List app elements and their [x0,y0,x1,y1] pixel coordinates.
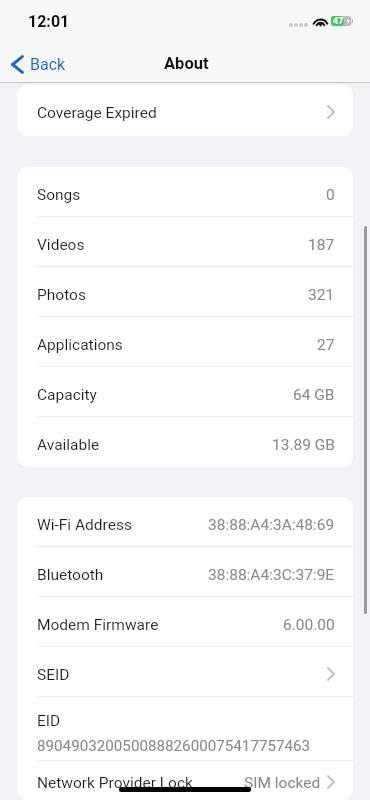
button[interactable]: Photos [17,267,353,317]
staticText: Network Provider Lock [37,774,193,792]
staticText: 13.89 GB [272,436,335,454]
staticText: About [164,54,209,73]
staticText: 38:88:A4:3C:37:9E [208,566,335,584]
staticText: 187 [308,236,335,254]
staticText: 321 [308,286,335,304]
staticText: Bluetooth [37,566,104,584]
button[interactable]: Back [11,55,66,74]
staticText: Available [37,436,100,454]
staticText: SEID [37,666,70,684]
staticText: Wi-Fi Address [37,516,132,534]
staticText: Songs [37,186,81,204]
staticText: 12:01 [28,12,70,31]
staticText: Photos [37,286,86,304]
staticText: 89049032005008882600075417757463 [37,737,311,755]
staticText: Applications [37,336,123,354]
staticText: 0 [326,186,335,204]
staticText: 38:88:A4:3A:48:69 [208,516,335,534]
button[interactable]: Songs [17,167,353,217]
other: Battery 47 percent [331,16,353,26]
staticText: Modem Firmware [37,616,159,634]
staticText: Videos [37,236,85,254]
staticText: 64 GB [293,386,335,404]
staticText: Capacity [37,386,97,404]
staticText: 47 [333,16,344,26]
button[interactable]: Bluetooth [17,547,353,597]
button[interactable]: Capacity [17,367,353,417]
button[interactable]: SEID [17,647,353,697]
staticText: EID [37,712,61,730]
staticText: Coverage Expired [37,104,157,122]
staticText: 27 [317,336,335,354]
button[interactable]: Applications [17,317,353,367]
button[interactable]: EID [17,697,353,761]
staticText: Back [30,55,66,74]
button[interactable]: Videos [17,217,353,267]
button[interactable]: Network Provider Lock [17,761,353,800]
button[interactable]: Wi-Fi Address [17,497,353,547]
staticText: 6.00.00 [283,616,335,634]
staticText: SIM locked [244,774,321,792]
button[interactable]: Modem Firmware [17,597,353,647]
button[interactable]: Available [17,417,353,467]
button[interactable]: Coverage Expired [17,85,353,136]
